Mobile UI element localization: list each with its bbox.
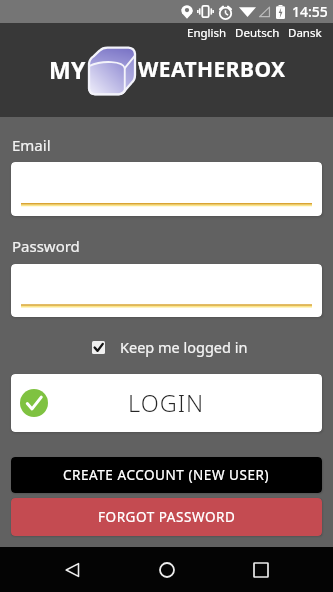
staticText: Password — [12, 236, 80, 256]
button[interactable]: CREATE ACCOUNT (NEW USER) — [11, 457, 322, 493]
button[interactable] — [11, 264, 322, 317]
button[interactable]: English — [187, 25, 227, 41]
button[interactable] — [11, 162, 322, 216]
button[interactable]: Keep me logged in — [92, 335, 248, 359]
button[interactable]: Recent apps — [239, 548, 283, 592]
staticText: Email — [12, 135, 51, 155]
button[interactable]: Home — [145, 548, 189, 592]
button[interactable]: LOGIN — [11, 374, 322, 432]
staticText: 14:55 — [292, 2, 328, 21]
staticText: MY — [49, 54, 86, 85]
button[interactable]: Dansk — [288, 25, 322, 41]
staticText: Keep me logged in — [120, 337, 248, 357]
button[interactable]: Deutsch — [235, 25, 280, 41]
staticText: CREATE ACCOUNT (NEW USER) — [63, 466, 270, 484]
button[interactable]: FORGOT PASSWORD — [11, 498, 322, 536]
staticText: WEATHERBOX — [138, 55, 286, 84]
staticText: FORGOT PASSWORD — [98, 508, 236, 526]
button[interactable]: Back — [50, 548, 94, 592]
staticText: LOGIN — [128, 387, 205, 419]
